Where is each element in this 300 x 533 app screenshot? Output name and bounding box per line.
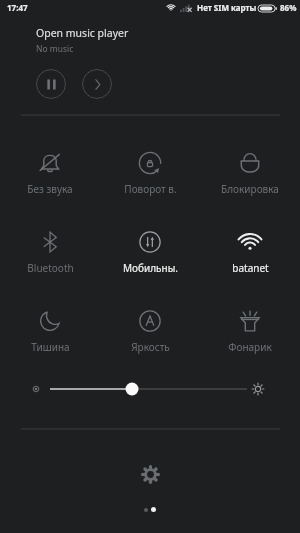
button[interactable]: Без звука — [0, 152, 100, 196]
button[interactable]: batanet — [200, 231, 300, 275]
staticText: Поворот в. — [124, 182, 177, 196]
staticText: Без звука — [27, 182, 73, 196]
button[interactable]: Pause — [36, 69, 66, 99]
staticText: Open music player — [36, 26, 129, 40]
staticText: Bluetooth — [27, 261, 74, 275]
button[interactable]: Open music player — [36, 26, 129, 40]
staticText: Блокировка — [221, 182, 279, 196]
staticText: 86% — [280, 2, 297, 13]
staticText: 17:47 — [7, 2, 28, 13]
staticText: Фонарик — [228, 340, 272, 354]
button[interactable]: Поворот в. — [100, 152, 200, 196]
staticText: No music — [36, 43, 74, 55]
staticText: Тишина — [31, 340, 70, 354]
button[interactable]: Фонарик — [200, 310, 300, 354]
staticText: Нет SIM карты — [197, 2, 257, 13]
staticText: Яркость — [131, 340, 170, 354]
button[interactable]: Bluetooth — [0, 231, 100, 275]
button[interactable]: Яркость — [100, 310, 200, 354]
button[interactable]: Settings — [132, 456, 168, 492]
button[interactable]: Brightness — [46, 379, 252, 399]
staticText: batanet — [232, 261, 269, 275]
button[interactable]: Мобильны. — [100, 231, 200, 275]
staticText: Мобильны. — [123, 261, 178, 275]
button[interactable]: Тишина — [0, 310, 100, 354]
button[interactable]: Next — [82, 69, 112, 99]
button[interactable]: Блокировка — [200, 152, 300, 196]
